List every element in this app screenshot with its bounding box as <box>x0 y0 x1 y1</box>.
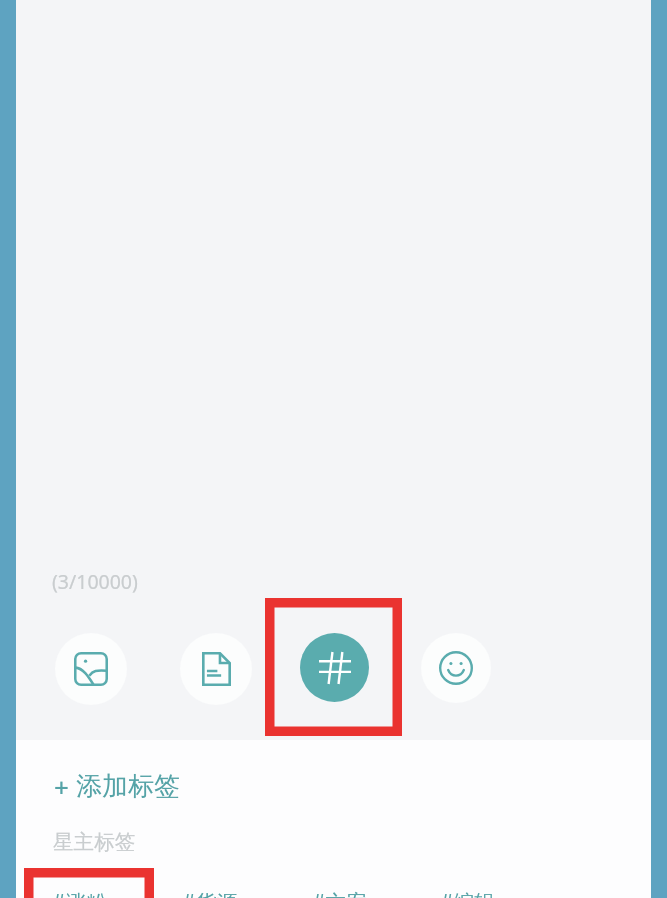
button[interactable]: Insert document <box>180 633 252 705</box>
button[interactable]: #涨粉 <box>48 884 112 898</box>
staticText: #文案 <box>312 888 368 898</box>
staticText: #涨粉 <box>52 888 108 898</box>
staticText: + <box>54 769 69 804</box>
staticText: 添加标签 <box>76 770 180 803</box>
button[interactable]: Insert image <box>55 633 127 705</box>
staticText: #编辑 <box>440 888 496 898</box>
button[interactable]: #文案 <box>308 884 372 898</box>
button[interactable]: #编辑 <box>436 884 500 898</box>
staticText: 星主标签 <box>53 829 136 855</box>
button[interactable]: Insert hashtag <box>300 633 369 702</box>
staticText: #货源 <box>182 888 238 898</box>
button[interactable]: Insert emoji <box>421 633 491 703</box>
button[interactable]: #货源 <box>178 884 242 898</box>
button[interactable]: + <box>40 762 194 811</box>
staticText: (3/10000) <box>52 568 138 595</box>
